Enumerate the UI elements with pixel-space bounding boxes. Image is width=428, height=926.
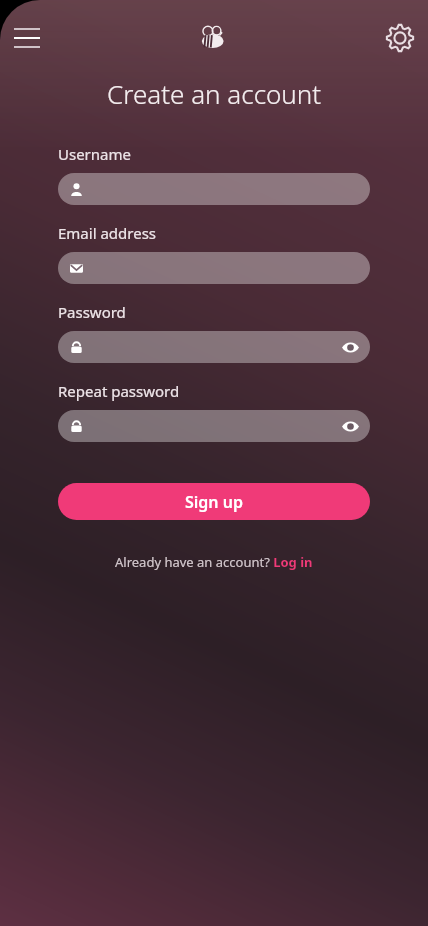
- button[interactable]: Show password: [337, 334, 363, 360]
- staticText: Email address: [58, 223, 157, 243]
- button[interactable]: Settings: [377, 15, 423, 61]
- staticText: Username: [58, 144, 131, 164]
- button[interactable]: Already have an account? Log in: [115, 553, 313, 571]
- button[interactable]: [58, 173, 370, 205]
- staticText: Password: [58, 302, 126, 322]
- staticText: Create an account: [107, 76, 322, 111]
- staticText: Sign up: [185, 491, 243, 513]
- staticText: Already have an account? Log in: [115, 553, 313, 571]
- staticText: Repeat password: [58, 381, 180, 401]
- button[interactable]: Show password: [58, 331, 370, 363]
- button[interactable]: [58, 252, 370, 284]
- button[interactable]: Show password: [337, 413, 363, 439]
- button[interactable]: Menu: [4, 15, 50, 61]
- button[interactable]: Logo: [192, 16, 236, 60]
- button[interactable]: Sign up: [58, 483, 370, 520]
- button[interactable]: Show password: [58, 410, 370, 442]
